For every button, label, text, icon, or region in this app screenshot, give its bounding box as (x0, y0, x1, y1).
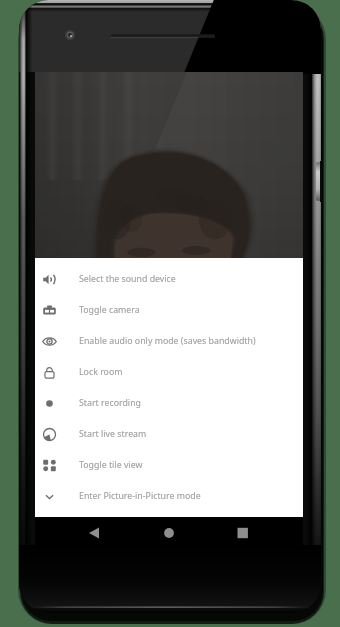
staticText: Select the sound device (79, 273, 176, 285)
staticText: Toggle camera (79, 304, 140, 316)
staticText: Start recording (79, 397, 141, 409)
button[interactable]: Start recording (35, 387, 303, 418)
other: Enter Picture-in-Picture mode (42, 489, 57, 504)
other: Select the sound device (42, 272, 57, 287)
other: Toggle camera (42, 303, 57, 318)
other: Lock room (42, 365, 57, 380)
other: Start recording (42, 396, 57, 411)
button[interactable]: Toggle camera (35, 294, 303, 325)
staticText: Enter Picture-in-Picture mode (79, 490, 201, 502)
staticText: Start live stream (79, 428, 147, 440)
button[interactable]: Lock room (35, 356, 303, 387)
button[interactable]: Enter Picture-in-Picture mode (35, 480, 303, 511)
other: Enable audio only mode (42, 334, 57, 349)
other: Start live stream (42, 427, 57, 442)
staticText: Enable audio only mode (saves bandwidth) (79, 335, 256, 347)
staticText: Toggle tile view (79, 459, 143, 471)
other: Toggle tile view (42, 458, 57, 473)
button[interactable]: Select the sound device (35, 263, 303, 294)
button[interactable]: Start live stream (35, 418, 303, 449)
button[interactable]: Toggle tile view (35, 449, 303, 480)
staticText: Lock room (79, 366, 123, 378)
button[interactable]: Enable audio only mode (35, 325, 303, 356)
